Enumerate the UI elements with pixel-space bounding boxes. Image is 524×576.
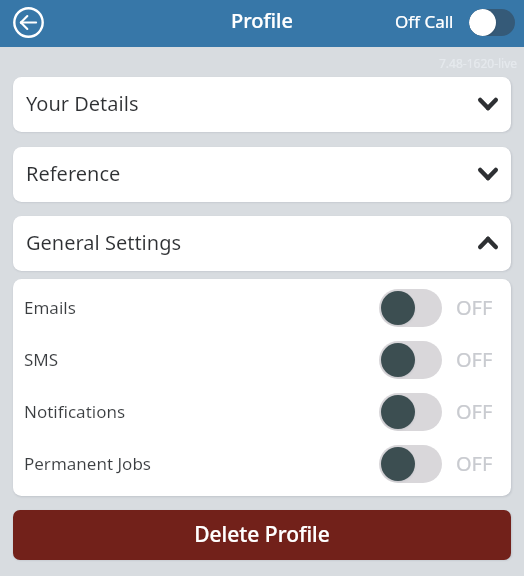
button[interactable]: General Settings bbox=[13, 216, 511, 271]
staticText: OFF bbox=[456, 398, 493, 425]
button[interactable]: Reference bbox=[13, 147, 511, 202]
staticText: Emails bbox=[24, 296, 76, 319]
button[interactable]: Delete Profile bbox=[13, 510, 511, 560]
staticText: Delete Profile bbox=[194, 520, 330, 549]
staticText: Your Details bbox=[26, 90, 139, 117]
staticText: OFF bbox=[456, 294, 493, 321]
staticText: Notifications bbox=[24, 400, 126, 423]
button[interactable]: Your Details bbox=[13, 77, 511, 132]
button[interactable]: Notifications bbox=[13, 386, 511, 438]
staticText: OFF bbox=[456, 450, 493, 477]
button[interactable]: Emails bbox=[13, 282, 511, 334]
button[interactable]: Permanent Jobs bbox=[13, 438, 511, 490]
staticText: General Settings bbox=[26, 229, 182, 256]
staticText: Permanent Jobs bbox=[24, 452, 152, 475]
staticText: Profile bbox=[231, 7, 293, 34]
staticText: SMS bbox=[24, 348, 59, 371]
button[interactable]: Off Call bbox=[393, 5, 517, 40]
button[interactable]: SMS bbox=[13, 334, 511, 386]
staticText: Off Call bbox=[395, 10, 454, 33]
button[interactable]: Back bbox=[8, 2, 48, 42]
staticText: Reference bbox=[26, 160, 121, 187]
staticText: 7.48-1620-live bbox=[439, 55, 518, 71]
staticText: OFF bbox=[456, 346, 493, 373]
